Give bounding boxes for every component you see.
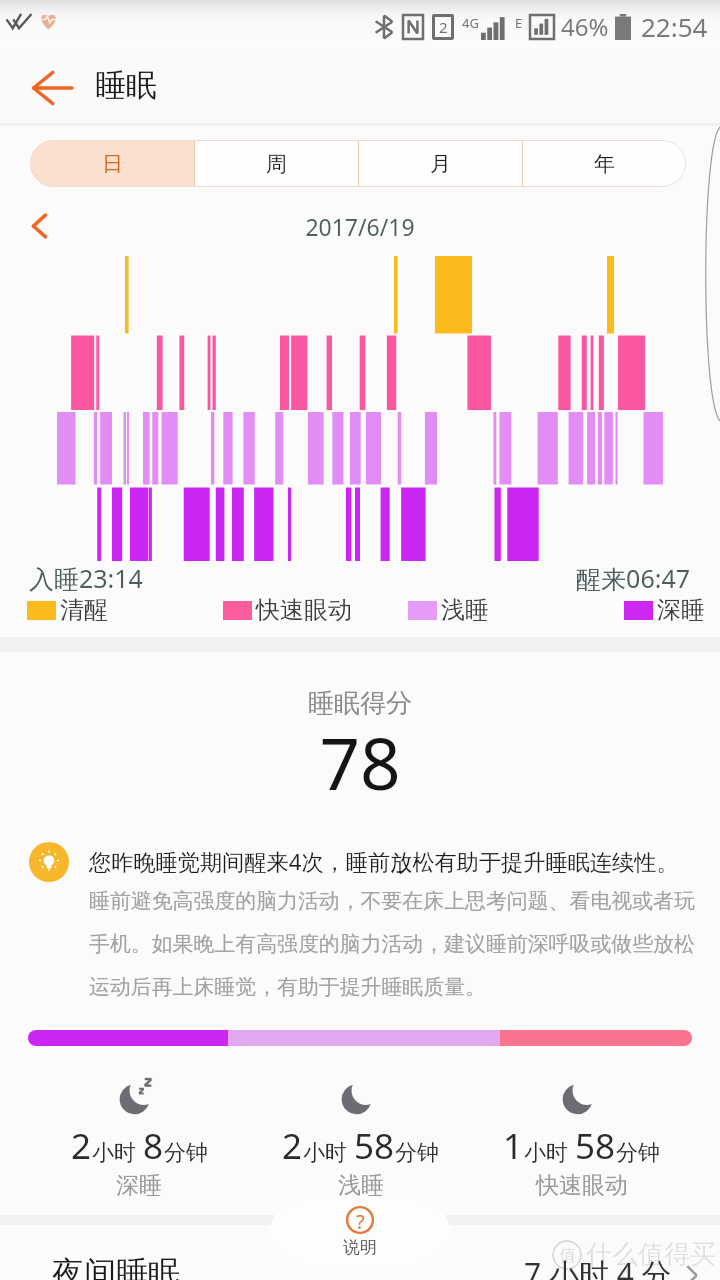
button[interactable]: 浅睡	[408, 595, 489, 625]
staticText: 浅睡	[441, 595, 489, 625]
staticText: 值	[559, 1245, 576, 1266]
staticText: 小时	[303, 1139, 347, 1167]
staticText: 月	[430, 151, 451, 177]
staticText: 7 小时 4 分	[524, 1253, 672, 1280]
staticText: 快速眼动	[256, 595, 352, 625]
staticText: 2017/6/19	[0, 211, 720, 242]
staticText: 睡眠	[95, 66, 157, 105]
staticText: 1	[503, 1122, 524, 1170]
staticText: 8	[143, 1122, 164, 1170]
staticText: 小时	[92, 1139, 136, 1167]
button[interactable]: 清醒	[27, 595, 108, 625]
staticText: 什么值得买	[586, 1238, 716, 1271]
staticText: 46%	[561, 10, 609, 43]
staticText: 2	[439, 17, 448, 37]
staticText: 小时	[524, 1139, 568, 1167]
staticText: 深睡	[116, 1171, 162, 1200]
staticText: 浅睡	[338, 1171, 384, 1200]
button[interactable]: 深睡	[624, 595, 705, 625]
staticText: 分钟	[164, 1139, 208, 1167]
staticText: 夜间睡眠	[52, 1253, 180, 1280]
staticText: 快速眼动	[536, 1171, 628, 1200]
staticText: 睡眠得分	[0, 687, 720, 720]
staticText: 您昨晚睡觉期间醒来4次，睡前放松有助于提升睡眠连续性。	[89, 846, 679, 876]
staticText: 清醒	[60, 595, 108, 625]
staticText: 年	[594, 151, 615, 177]
staticText: 睡前避免高强度的脑力活动，不要在床上思考问题、看电视或者玩手机。如果晚上有高强度…	[89, 888, 697, 1000]
button[interactable]: 说明	[270, 1200, 450, 1264]
button[interactable]: Back	[20, 56, 84, 120]
staticText: 22:54	[641, 9, 708, 44]
staticText: 入睡23:14	[29, 561, 143, 595]
staticText: 2	[71, 1122, 92, 1170]
button[interactable]: 周	[194, 140, 358, 187]
button[interactable]: 日	[30, 140, 194, 187]
staticText: 78	[0, 714, 720, 811]
button[interactable]: 月	[358, 140, 522, 187]
staticText: 说明	[343, 1237, 377, 1258]
staticText: 分钟	[395, 1139, 439, 1167]
staticText: 日	[102, 151, 123, 177]
button[interactable]: 年	[522, 140, 686, 187]
button[interactable]: 快速眼动	[223, 595, 352, 625]
staticText: ?	[356, 1208, 365, 1235]
staticText: 周	[266, 151, 287, 177]
staticText: 2	[282, 1122, 303, 1170]
staticText: 深睡	[657, 595, 705, 625]
staticText: E	[515, 14, 523, 32]
staticText: 分钟	[616, 1139, 660, 1167]
staticText: 醒来06:47	[0, 561, 690, 595]
staticText: 58	[354, 1122, 395, 1170]
staticText: 58	[575, 1122, 616, 1170]
button[interactable]: Previous day	[20, 206, 60, 246]
staticText: 4G	[462, 14, 479, 32]
